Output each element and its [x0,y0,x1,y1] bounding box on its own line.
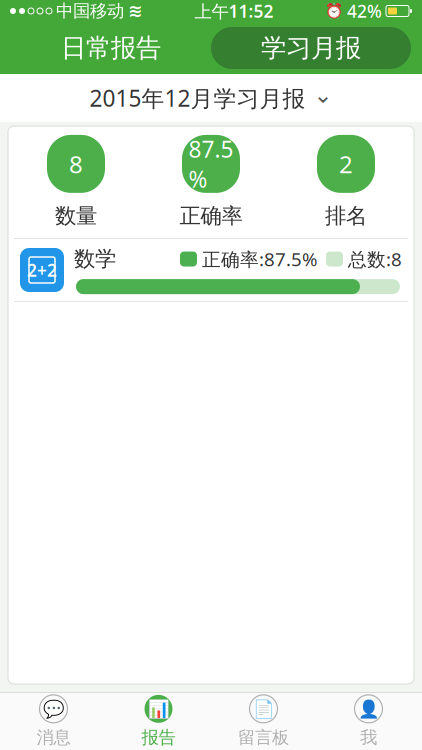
staticText: 上午11:52 [194,0,273,22]
button[interactable]: 日常报告 [11,27,211,69]
staticText: 42% [347,0,382,22]
staticText: 💬 [42,699,64,719]
staticText: 总数:8 [348,247,402,271]
staticText: 我 [360,727,377,748]
button[interactable]: 👤 [316,693,421,750]
staticText: ⌄ [313,82,332,108]
staticText: 排名 [325,203,367,229]
staticText: 👤 [357,699,379,719]
button[interactable]: 2015年12月学习月报 [0,74,422,122]
staticText: 87.5% [188,134,233,194]
staticText: 正确率 [179,203,242,229]
staticText: 2 [339,148,353,180]
staticText: 正确率:87.5% [202,247,318,271]
staticText: 2015年12月学习月报 [89,83,305,113]
staticText: ≋ [128,1,143,21]
staticText: 8 [69,148,83,180]
staticText: 数量 [55,203,97,229]
staticText: ⏰ [325,3,343,19]
staticText: 日常报告 [61,32,161,63]
staticText: 2+2 [27,258,57,281]
button[interactable]: 💬 [1,693,106,750]
staticText: 中国移动 [56,0,124,22]
staticText: 消息 [36,727,70,748]
staticText: 📊 [147,699,169,719]
staticText: 📄 [252,699,274,719]
staticText: 学习月报 [261,32,361,63]
button[interactable]: 📊 [106,693,211,750]
staticText: 数学 [74,246,116,272]
button[interactable]: 学习月报 [211,27,411,69]
staticText: 报告 [141,727,175,748]
button[interactable]: 📄 [211,693,316,750]
staticText: 留言板 [238,727,289,748]
